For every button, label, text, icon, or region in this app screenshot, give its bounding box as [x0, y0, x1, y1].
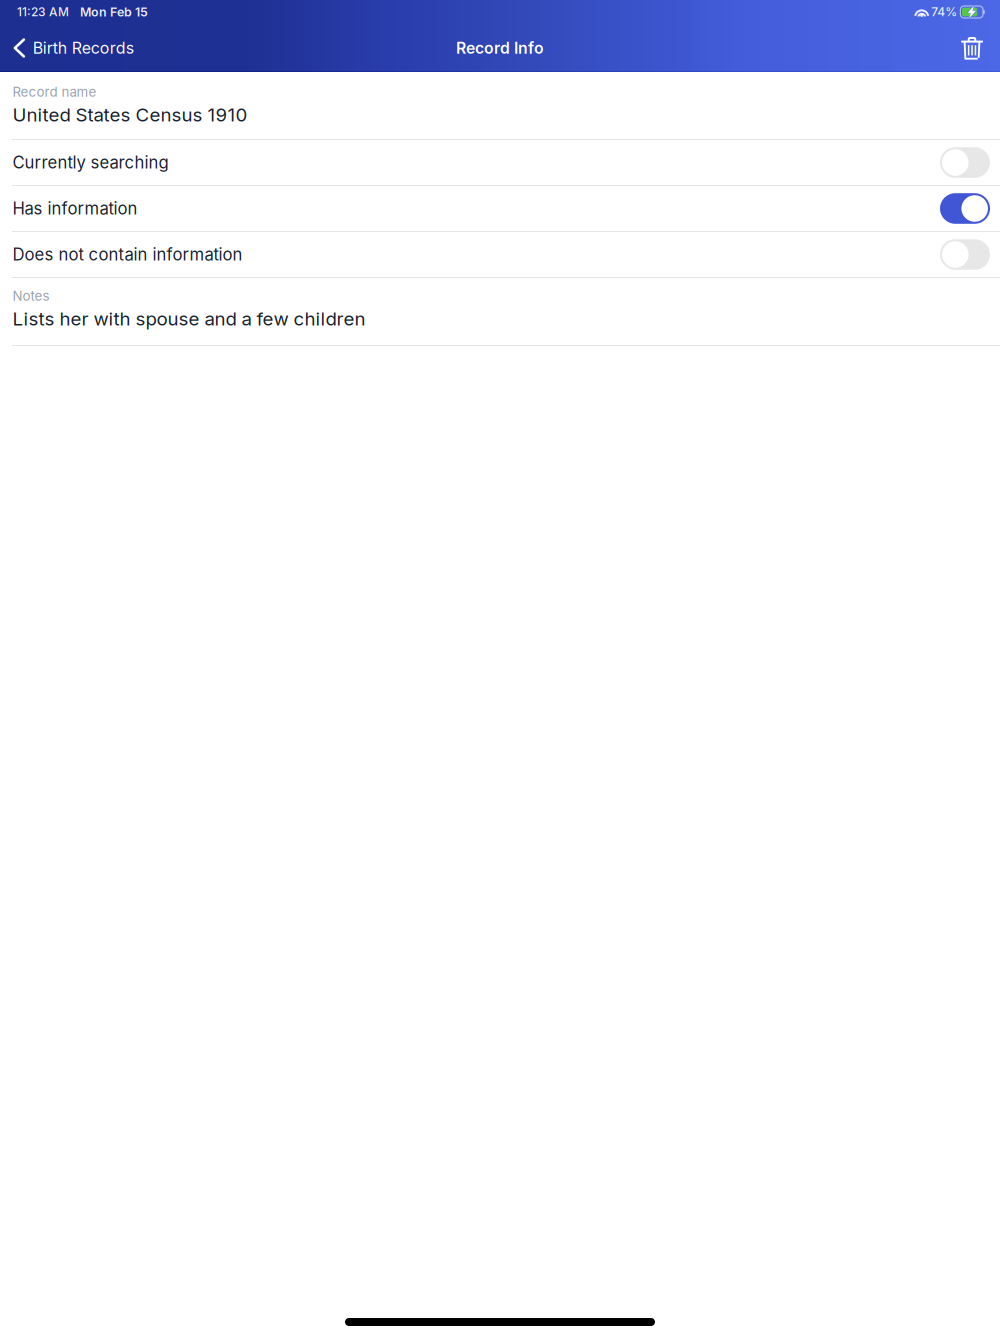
staticText: Birth Records [33, 38, 134, 58]
staticText: Does not contain information [12, 244, 242, 265]
staticText: Mon Feb 15 [80, 4, 148, 19]
staticText: Notes [12, 288, 49, 304]
button[interactable]: Birth Records [0, 24, 146, 72]
staticText: Has information [12, 198, 137, 219]
staticText: Record Info [456, 38, 544, 57]
button[interactable]: Record name [0, 72, 1000, 139]
button[interactable]: Notes [0, 278, 1000, 345]
staticText: Record name [12, 84, 96, 100]
staticText: Lists her with spouse and a few children [12, 307, 365, 330]
staticText: 11:23 AM [17, 5, 69, 19]
button[interactable]: Delete record [941, 24, 1000, 72]
button[interactable]: Has information [0, 186, 1000, 231]
staticText: United States Census 1910 [12, 103, 247, 126]
button[interactable]: Currently searching [0, 140, 1000, 185]
staticText: 74% [931, 5, 957, 19]
button[interactable]: Does not contain information [0, 232, 1000, 277]
staticText: Currently searching [12, 152, 168, 173]
